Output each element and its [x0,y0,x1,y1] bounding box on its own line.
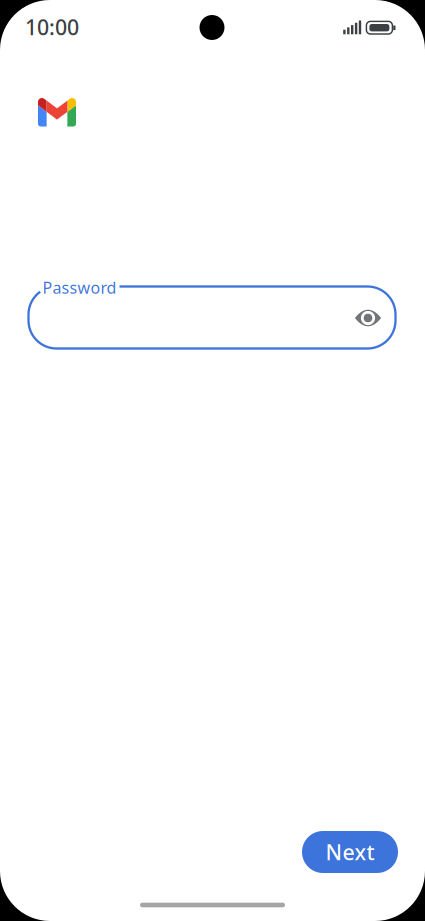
staticText: 10:00 [25,13,79,41]
button[interactable]: Next [302,831,398,873]
button[interactable]: Show password [0,0,425,921]
staticText: Password [42,277,116,298]
staticText: Next [325,838,374,866]
